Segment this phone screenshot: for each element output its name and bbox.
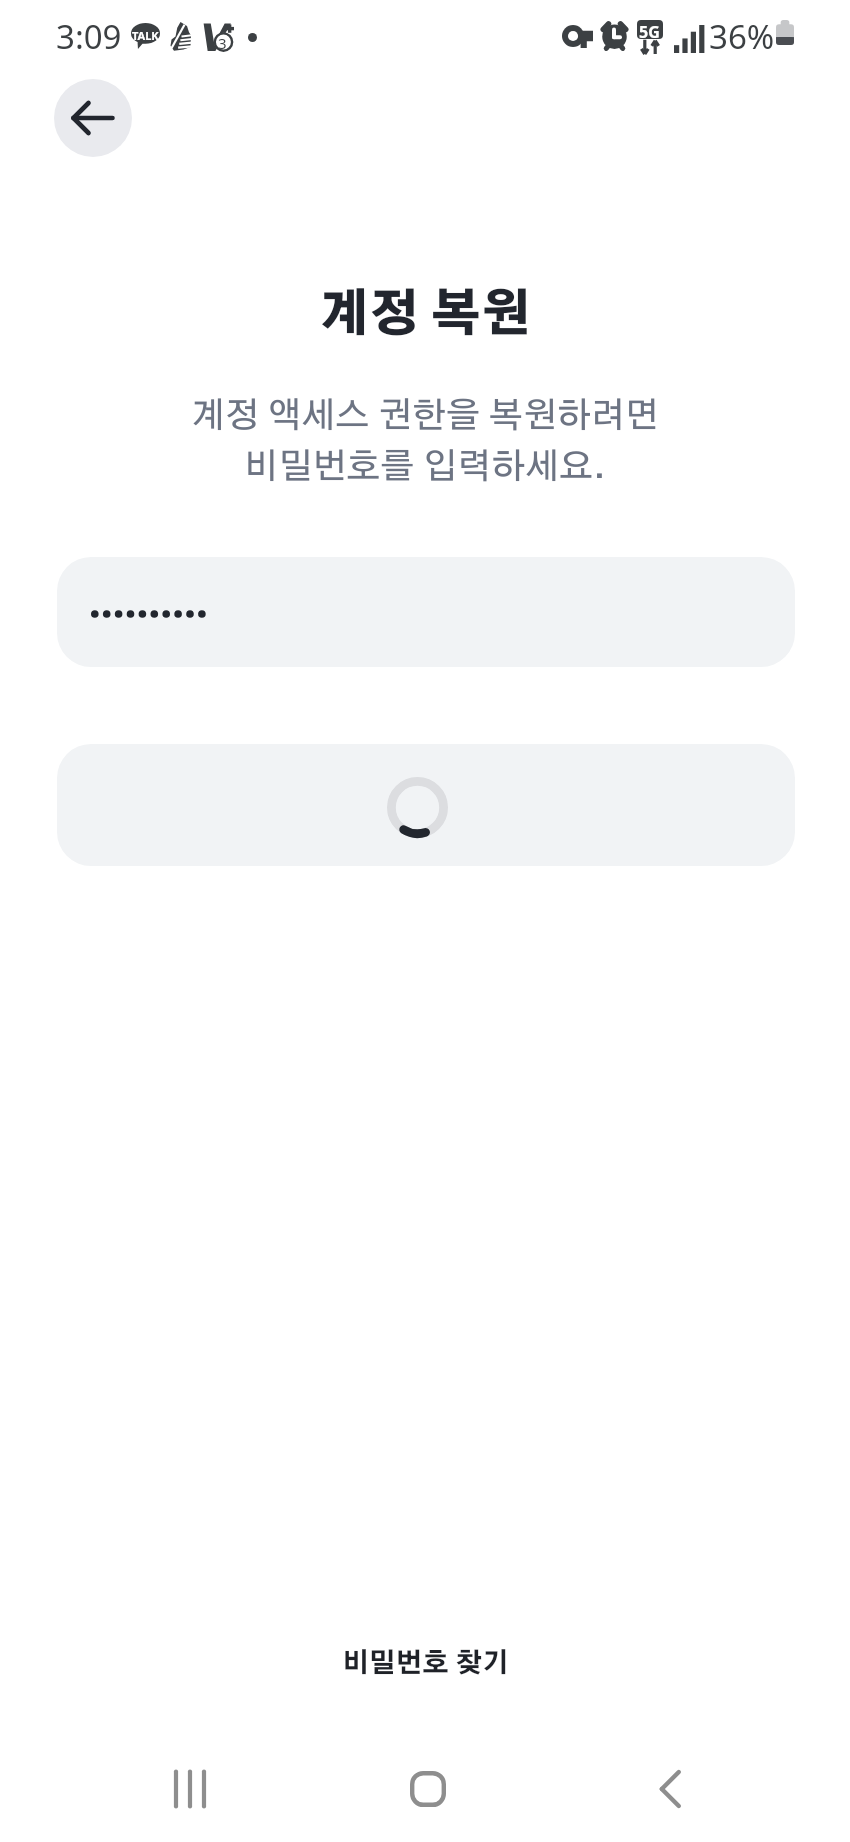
staticText: 계정 복원 bbox=[0, 292, 850, 341]
staticText: 3 bbox=[218, 33, 227, 53]
button[interactable]: 비밀번호 찾기 bbox=[302, 1631, 549, 1698]
button[interactable]: Back bbox=[589, 1740, 749, 1837]
staticText: 비밀번호 찾기 bbox=[342, 1651, 509, 1678]
staticText: TALK bbox=[132, 28, 159, 43]
button[interactable] bbox=[57, 557, 795, 667]
staticText: 3:09 bbox=[56, 14, 122, 59]
button[interactable] bbox=[57, 744, 795, 866]
staticText: 5G bbox=[639, 21, 660, 43]
button[interactable]: Back bbox=[54, 79, 132, 157]
button[interactable]: Recents bbox=[110, 1740, 270, 1837]
button[interactable]: Home bbox=[348, 1740, 508, 1837]
staticText: 36% bbox=[709, 14, 775, 59]
staticText: 계정 액세스 권한을 복원하려면 비밀번호를 입력하세요. bbox=[0, 399, 850, 485]
